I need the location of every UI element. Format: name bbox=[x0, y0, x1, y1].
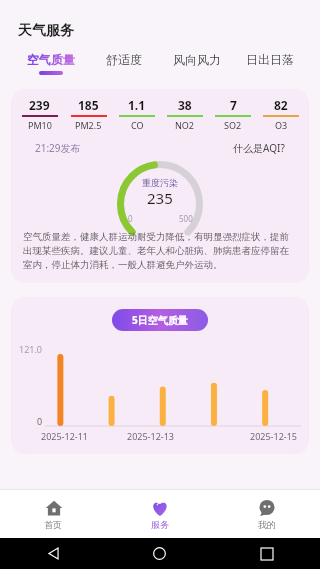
staticText: 1.1 bbox=[128, 97, 146, 113]
staticText: 服务 bbox=[151, 519, 169, 530]
staticText: 舒适度 bbox=[106, 52, 142, 67]
staticText: PM10 bbox=[28, 119, 52, 131]
staticText: 235 bbox=[147, 188, 173, 208]
staticText: NO2 bbox=[175, 119, 195, 131]
button[interactable]: 什么是AQI? bbox=[233, 141, 285, 155]
staticText: 0 bbox=[37, 415, 43, 427]
staticText: 21:29发布 bbox=[35, 141, 81, 155]
staticText: 什么是AQI? bbox=[233, 141, 285, 155]
staticText: 82 bbox=[274, 97, 288, 113]
staticText: CO bbox=[131, 119, 144, 131]
staticText: 185 bbox=[78, 97, 99, 113]
staticText: 500 bbox=[179, 213, 193, 223]
staticText: 首页 bbox=[44, 519, 62, 530]
staticText: 7 bbox=[230, 97, 237, 113]
button[interactable]: 5日空气质量 bbox=[112, 309, 208, 331]
staticText: 空气质量差，健康人群运动耐受力降低，有明显强烈症状，提前出现某些疾病。建议儿童、… bbox=[23, 231, 297, 271]
staticText: 121.0 bbox=[19, 343, 43, 355]
button[interactable]: 日出日落 bbox=[233, 50, 306, 77]
button[interactable]: 舒适度 bbox=[87, 50, 160, 77]
staticText: 我的 bbox=[258, 519, 276, 530]
staticText: 风向风力 bbox=[173, 52, 221, 67]
staticText: 2025-12-13 bbox=[127, 430, 174, 442]
staticText: O3 bbox=[275, 119, 288, 131]
staticText: 空气质量 bbox=[27, 52, 75, 67]
staticText: 日出日落 bbox=[246, 52, 294, 67]
staticText: 2025-12-11 bbox=[41, 430, 88, 442]
button[interactable]: 我的 bbox=[213, 498, 320, 530]
button[interactable]: 首页 bbox=[0, 498, 106, 530]
staticText: SO2 bbox=[224, 119, 242, 131]
staticText: 5日空气质量 bbox=[132, 313, 188, 327]
staticText: PM2.5 bbox=[75, 119, 102, 131]
button[interactable]: 空气质量 bbox=[14, 50, 87, 77]
button[interactable]: 风向风力 bbox=[160, 50, 233, 77]
staticText: 天气服务 bbox=[18, 22, 74, 40]
button[interactable]: 服务 bbox=[106, 498, 213, 530]
staticText: 38 bbox=[178, 97, 192, 113]
staticText: 0 bbox=[128, 213, 133, 223]
staticText: 重度污染 bbox=[142, 177, 178, 188]
staticText: 2025-12-15 bbox=[250, 430, 297, 442]
staticText: 239 bbox=[29, 97, 50, 113]
